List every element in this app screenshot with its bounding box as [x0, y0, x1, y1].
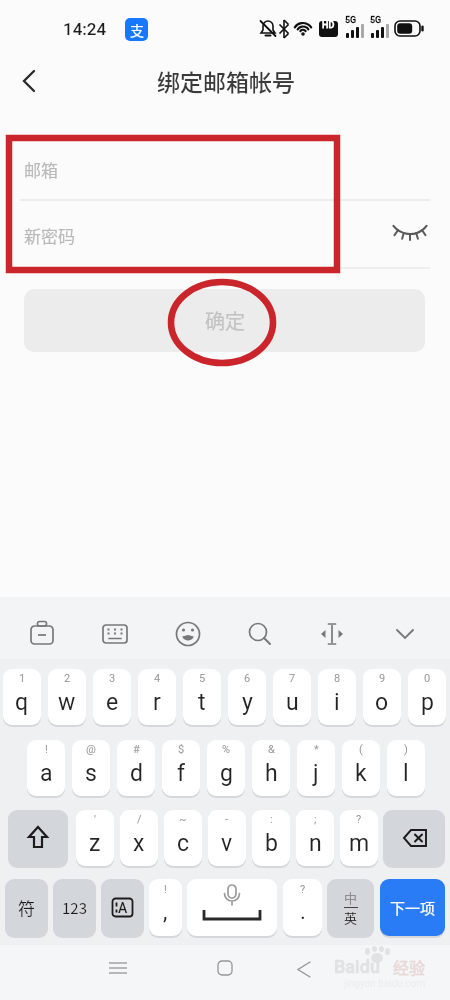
- staticText: t: [198, 689, 206, 716]
- button[interactable]: 123: [53, 879, 96, 936]
- staticText: 英: [344, 908, 358, 927]
- staticText: 经验: [393, 955, 426, 977]
- button[interactable]: &: [252, 740, 290, 796]
- staticText: l: [403, 760, 409, 787]
- staticText: ?: [300, 883, 306, 896]
- button[interactable]: [390, 216, 430, 256]
- button[interactable]: %: [207, 740, 245, 796]
- button[interactable]: 3: [93, 669, 131, 725]
- staticText: w: [58, 689, 76, 716]
- staticText: ): [404, 743, 408, 756]
- staticText: 4: [154, 672, 161, 685]
- button[interactable]: !: [149, 879, 182, 936]
- staticText: 5: [199, 672, 206, 685]
- staticText: ~: [179, 813, 187, 826]
- button[interactable]: 下一项: [380, 879, 445, 936]
- button[interactable]: [282, 948, 327, 993]
- staticText: :: [270, 813, 273, 826]
- staticText: x: [133, 830, 145, 857]
- staticText: y: [242, 689, 253, 716]
- staticText: v: [221, 830, 233, 857]
- button[interactable]: (: [342, 740, 380, 796]
- button[interactable]: -: [208, 810, 246, 866]
- button[interactable]: !: [27, 740, 65, 796]
- staticText: c: [177, 830, 190, 857]
- staticText: r: [153, 689, 161, 716]
- button[interactable]: 5: [183, 669, 221, 725]
- staticText: 14:24: [63, 19, 107, 39]
- button[interactable]: 0: [408, 669, 446, 725]
- staticText: 下一项: [390, 897, 436, 919]
- button[interactable]: ): [387, 740, 425, 796]
- button[interactable]: ;: [296, 810, 334, 866]
- button[interactable]: 4: [138, 669, 176, 725]
- staticText: d: [130, 760, 143, 787]
- button[interactable]: 符: [5, 879, 48, 936]
- button[interactable]: 邮箱: [24, 156, 84, 182]
- button[interactable]: [383, 810, 445, 866]
- staticText: 支: [130, 20, 144, 40]
- button[interactable]: A: [101, 879, 144, 936]
- button[interactable]: 新密码: [24, 222, 104, 248]
- button[interactable]: [156, 607, 216, 651]
- staticText: /: [137, 813, 142, 826]
- staticText: @: [86, 743, 96, 756]
- staticText: .: [300, 899, 306, 925]
- staticText: n: [309, 830, 322, 857]
- button[interactable]: 8: [318, 669, 356, 725]
- staticText: m: [349, 830, 370, 857]
- button[interactable]: ?: [340, 810, 378, 866]
- staticText: ,: [163, 899, 168, 925]
- button[interactable]: [12, 607, 72, 651]
- staticText: 7: [289, 672, 296, 685]
- staticText: 123: [62, 897, 87, 919]
- button[interactable]: *: [297, 740, 335, 796]
- button[interactable]: [300, 607, 360, 651]
- button[interactable]: [372, 607, 432, 651]
- button[interactable]: [203, 948, 248, 993]
- button[interactable]: #: [117, 740, 155, 796]
- staticText: b: [265, 830, 278, 857]
- button[interactable]: 6: [228, 669, 266, 725]
- staticText: 2: [64, 672, 71, 685]
- button[interactable]: :: [252, 810, 290, 866]
- staticText: 3: [109, 672, 116, 685]
- button[interactable]: 7: [273, 669, 311, 725]
- staticText: 邮箱: [24, 157, 58, 182]
- staticText: &: [268, 743, 275, 756]
- staticText: 绑定邮箱帐号: [157, 64, 295, 97]
- staticText: 符: [18, 895, 35, 920]
- button[interactable]: [8, 810, 68, 866]
- button[interactable]: [84, 607, 144, 651]
- button[interactable]: 确定: [24, 289, 425, 352]
- button[interactable]: 2: [48, 669, 86, 725]
- button[interactable]: [187, 879, 277, 936]
- staticText: ?: [356, 813, 362, 826]
- staticText: 6: [244, 672, 251, 685]
- button[interactable]: [10, 66, 46, 96]
- staticText: z: [89, 830, 101, 857]
- button[interactable]: /: [120, 810, 158, 866]
- staticText: j: [313, 760, 319, 787]
- button[interactable]: $: [162, 740, 200, 796]
- button[interactable]: 1: [3, 669, 41, 725]
- button[interactable]: ?: [283, 879, 322, 936]
- staticText: f: [177, 760, 185, 787]
- staticText: 0: [424, 672, 431, 685]
- button[interactable]: [95, 948, 140, 993]
- button[interactable]: 9: [363, 669, 401, 725]
- staticText: 1: [19, 672, 26, 685]
- button[interactable]: ~: [164, 810, 202, 866]
- staticText: jingyan.baidu.com: [344, 978, 426, 990]
- staticText: p: [421, 689, 434, 716]
- staticText: i: [334, 689, 340, 716]
- staticText: (: [359, 743, 363, 756]
- button[interactable]: 中: [327, 879, 374, 936]
- staticText: o: [375, 689, 389, 716]
- staticText: a: [40, 760, 53, 787]
- button[interactable]: @: [72, 740, 110, 796]
- button[interactable]: ': [76, 810, 114, 866]
- button[interactable]: [228, 607, 288, 651]
- staticText: 确定: [205, 306, 245, 335]
- staticText: s: [85, 760, 97, 787]
